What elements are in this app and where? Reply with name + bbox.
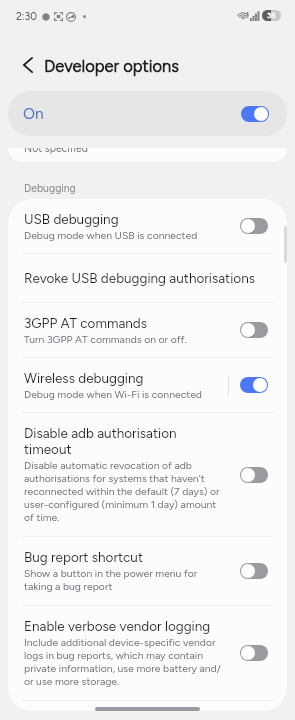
staticText: 3GPP AT commands xyxy=(24,315,148,331)
staticText: Disable automatic revocation of adb auth… xyxy=(24,459,221,524)
button[interactable]: Disable adb authorisation timeout xyxy=(8,413,287,536)
staticText: Wireless debugging xyxy=(24,370,144,386)
staticText: Disable adb authorisation timeout xyxy=(24,425,221,457)
staticText: Show a button in the power menu for taki… xyxy=(24,567,221,593)
staticText: Bug report shortcut xyxy=(24,549,144,565)
button[interactable]: Navigate up xyxy=(13,50,43,80)
staticText: Turn 3GPP AT commands on or off. xyxy=(24,333,187,345)
button[interactable]: On xyxy=(8,91,287,136)
staticText: Not specified xyxy=(24,148,88,155)
staticText: On xyxy=(23,104,44,123)
staticText: Include additional device-specific vendo… xyxy=(24,636,221,688)
button[interactable]: 3GPP AT commands xyxy=(8,303,287,357)
button[interactable]: USB debugging xyxy=(8,199,287,253)
button[interactable]: Revoke USB debugging authorisations xyxy=(8,254,287,302)
staticText: Developer options xyxy=(44,56,180,76)
staticText: Revoke USB debugging authorisations xyxy=(24,270,256,286)
staticText: 2:30 xyxy=(16,10,37,23)
staticText: USB debugging xyxy=(24,211,119,227)
staticText: Debugging xyxy=(24,182,76,195)
staticText: Enable verbose vendor logging xyxy=(24,618,211,634)
staticText: Debug mode when USB is connected xyxy=(24,229,198,241)
button[interactable]: Bug report shortcut xyxy=(8,537,287,605)
staticText: Debug mode when Wi-Fi is connected xyxy=(24,388,202,400)
button[interactable]: Wireless debugging xyxy=(8,358,287,412)
button[interactable]: Enable verbose vendor logging xyxy=(8,606,287,700)
staticText: 38 xyxy=(267,11,276,20)
